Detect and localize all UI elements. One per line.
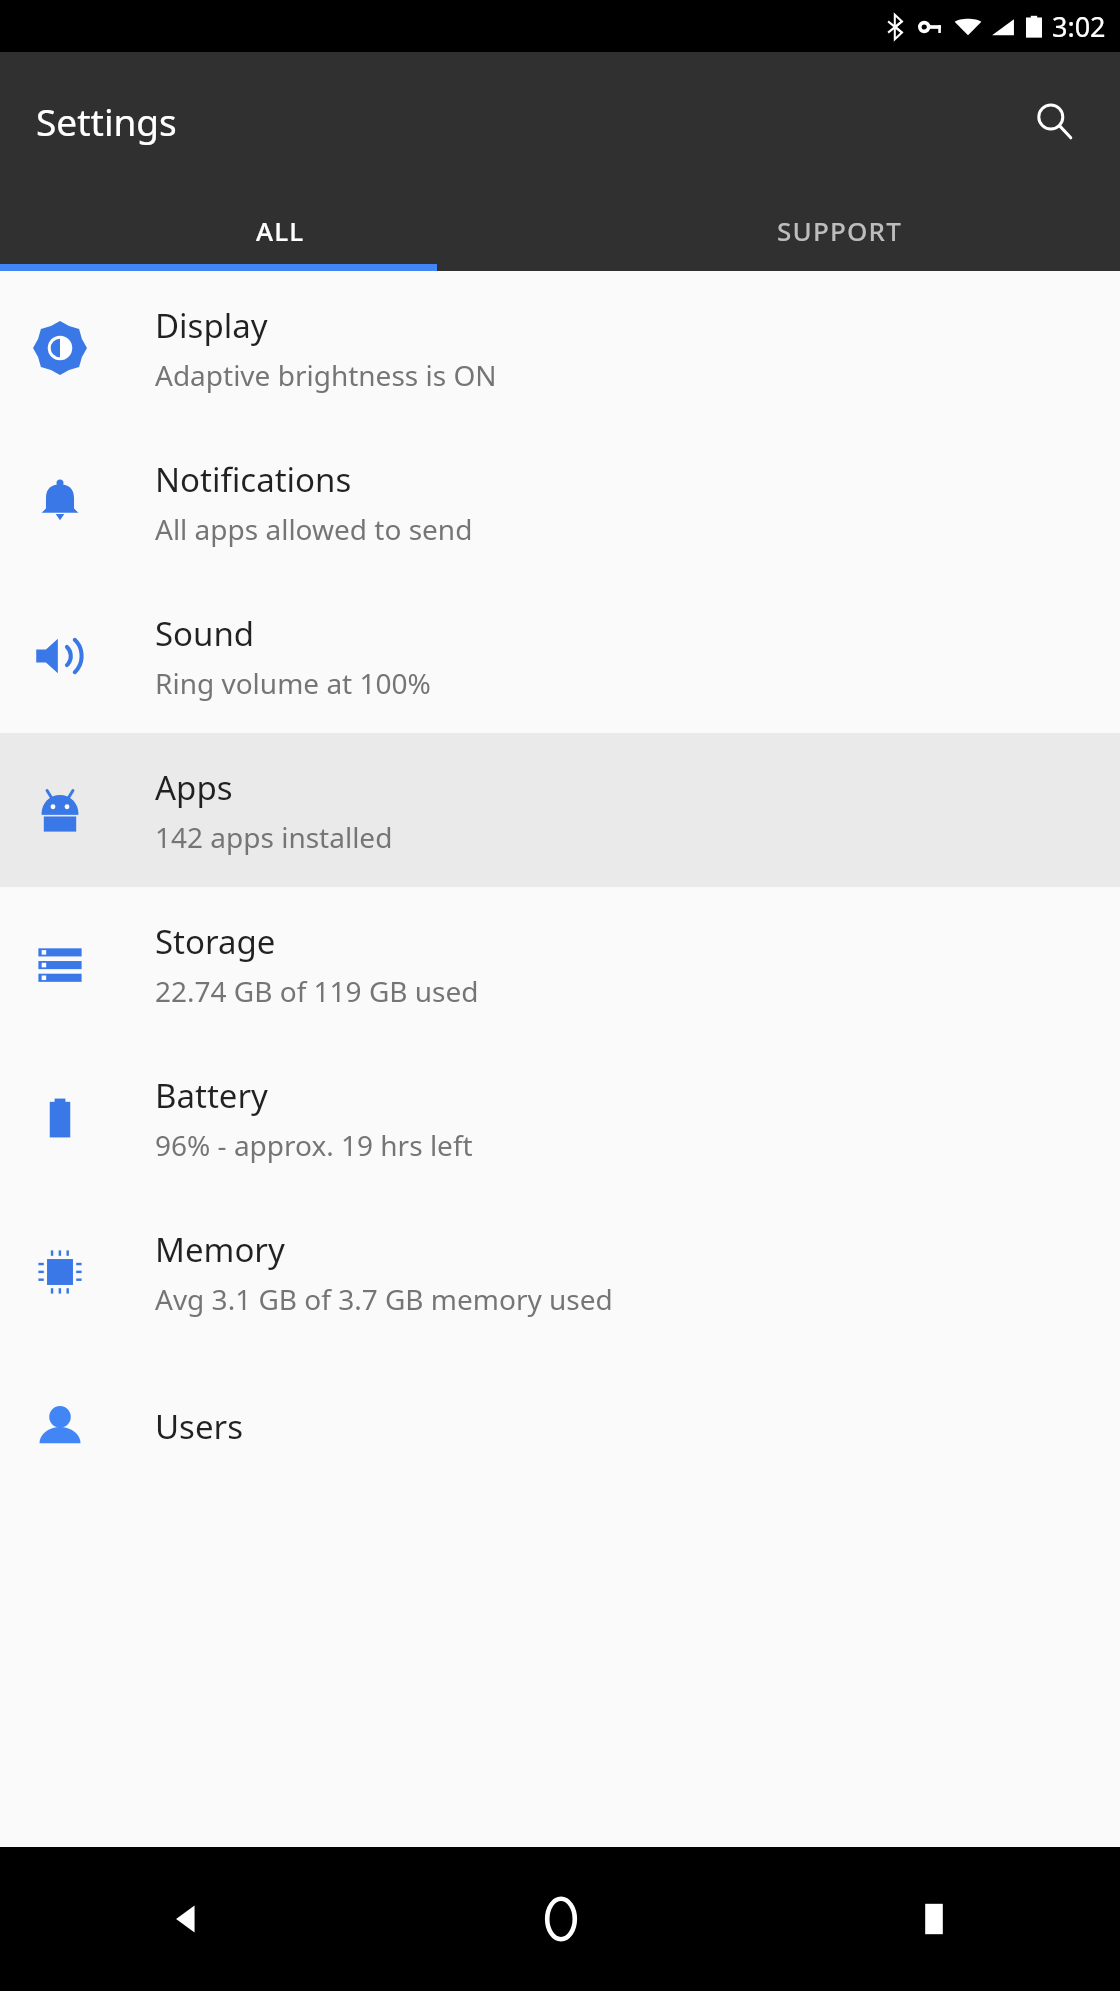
staticText: 96% - approx. 19 hrs left <box>155 1126 473 1164</box>
button[interactable]: Home <box>374 1847 747 1991</box>
staticText: 3:02 <box>1052 8 1106 45</box>
staticText: ALL <box>256 213 305 248</box>
button[interactable]: Apps <box>0 733 1120 887</box>
staticText: SUPPORT <box>777 213 903 248</box>
button[interactable]: Storage <box>0 887 1120 1041</box>
button[interactable]: ALL <box>0 190 560 271</box>
staticText: Adaptive brightness is ON <box>155 356 497 394</box>
staticText: Ring volume at 100% <box>155 664 431 702</box>
staticText: Display <box>155 303 268 348</box>
staticText: Storage <box>155 919 276 964</box>
staticText: Battery <box>155 1073 268 1118</box>
staticText: 142 apps installed <box>155 818 393 856</box>
staticText: Sound <box>155 611 255 656</box>
button[interactable]: Memory <box>0 1195 1120 1349</box>
button[interactable]: Recents <box>747 1847 1120 1991</box>
button[interactable]: Search <box>1018 85 1090 157</box>
staticText: Apps <box>155 765 233 810</box>
staticText: Avg 3.1 GB of 3.7 GB memory used <box>155 1280 613 1318</box>
staticText: Notifications <box>155 457 352 502</box>
staticText: All apps allowed to send <box>155 510 473 548</box>
button[interactable]: Notifications <box>0 425 1120 579</box>
button[interactable]: Back <box>0 1847 374 1991</box>
button[interactable]: Battery <box>0 1041 1120 1195</box>
button[interactable]: Display <box>0 271 1120 425</box>
staticText: Settings <box>36 96 177 146</box>
staticText: Memory <box>155 1227 285 1272</box>
staticText: Users <box>155 1404 243 1449</box>
staticText: 22.74 GB of 119 GB used <box>155 972 479 1010</box>
button[interactable]: Sound <box>0 579 1120 733</box>
button[interactable]: SUPPORT <box>560 190 1120 271</box>
